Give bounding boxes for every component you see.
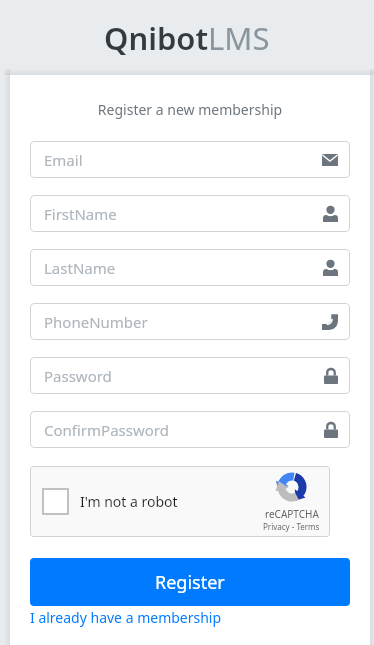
button[interactable]: FirstName: [30, 195, 350, 232]
staticText: Register a new membership: [30, 100, 350, 119]
staticText: LastName: [44, 258, 116, 278]
staticText: I already have a membership: [30, 608, 222, 627]
staticText: QnibotLMS: [104, 17, 270, 59]
button[interactable]: ConfirmPassword: [30, 411, 350, 448]
staticText: Email: [44, 150, 83, 170]
button[interactable]: I already have a membership: [30, 608, 222, 627]
button[interactable]: Password: [30, 357, 350, 394]
staticText: Register: [155, 570, 225, 595]
staticText: Password: [44, 366, 112, 386]
button[interactable]: Register: [30, 558, 350, 606]
staticText: I'm not a robot: [80, 492, 178, 511]
staticText: ConfirmPassword: [44, 420, 169, 440]
staticText: FirstName: [44, 204, 117, 224]
staticText: reCAPTCHA: [265, 507, 319, 521]
button[interactable]: Email: [30, 141, 350, 178]
button[interactable]: PhoneNumber: [30, 303, 350, 340]
button[interactable]: I'm not a robot: [30, 466, 330, 537]
button[interactable]: LastName: [30, 249, 350, 286]
staticText: Privacy - Terms: [263, 521, 320, 532]
staticText: PhoneNumber: [44, 312, 148, 332]
